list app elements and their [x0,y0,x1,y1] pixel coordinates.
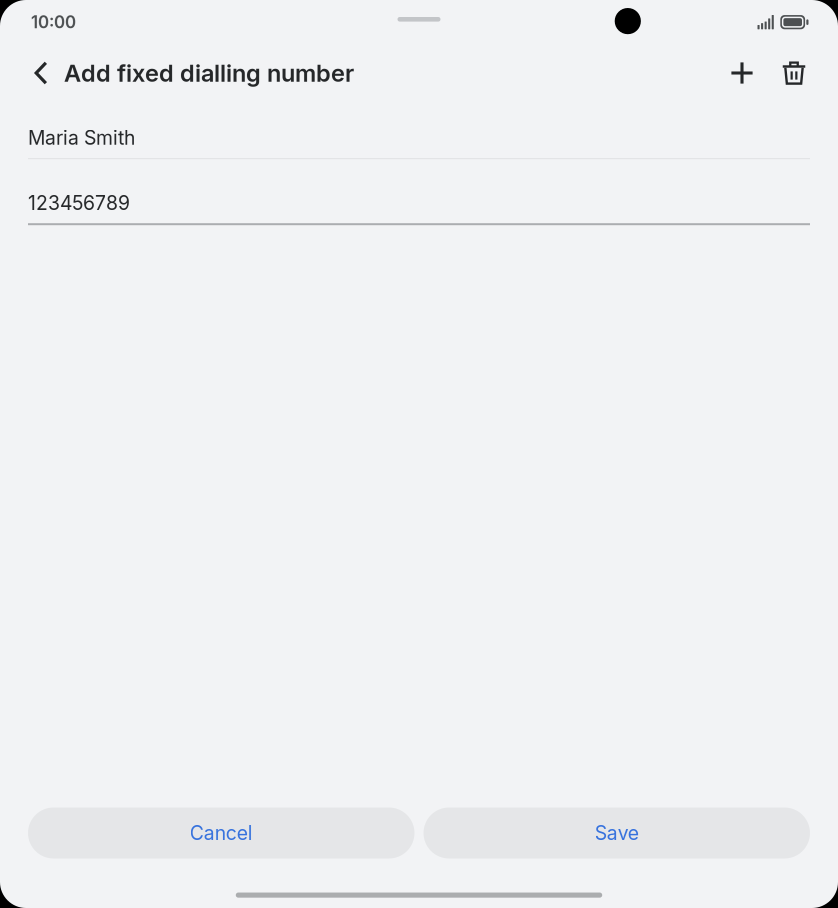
staticText: Maria Smith [28,126,135,149]
button[interactable]: Add [716,47,768,99]
button[interactable]: Delete [768,47,820,99]
staticText: Save [595,821,639,845]
button[interactable]: Maria Smith [28,126,810,159]
staticText: 10:00 [31,12,76,32]
button[interactable]: Save [423,807,810,858]
staticText: Add fixed dialling number [64,59,354,87]
button[interactable]: Cancel [28,807,414,858]
staticText: Cancel [190,821,253,845]
button[interactable]: 123456789 [28,191,810,225]
staticText: 123456789 [28,191,130,215]
button[interactable]: Back [18,47,64,99]
